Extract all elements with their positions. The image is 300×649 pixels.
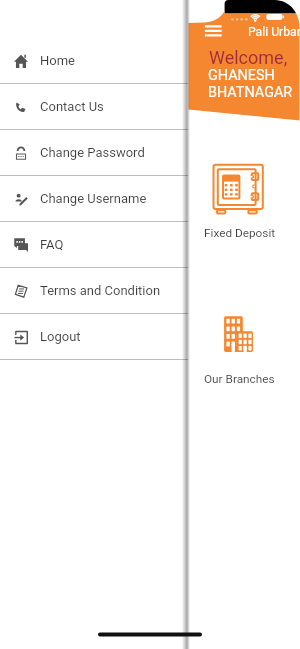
staticText: Terms and Condition: [40, 283, 161, 298]
staticText: Our Branches: [204, 372, 275, 386]
staticText: Logout: [40, 329, 81, 344]
staticText: Contact Us: [40, 99, 104, 114]
button[interactable]: Contact Us: [0, 84, 188, 129]
button[interactable]: Open navigation drawer: [197, 17, 229, 45]
button[interactable]: Logout: [0, 314, 188, 359]
button[interactable]: FAQ: [0, 222, 188, 267]
staticText: FAQ: [40, 237, 64, 252]
button[interactable]: Change Password: [0, 130, 188, 175]
staticText: Change Password: [40, 145, 145, 160]
staticText: Welcome,: [209, 47, 288, 68]
button[interactable]: Home: [0, 38, 188, 83]
staticText: BHATNAGAR: [208, 84, 293, 101]
staticText: GHANESH: [208, 67, 275, 84]
staticText: Home: [40, 53, 75, 68]
button[interactable]: Our Branches: [189, 292, 300, 397]
staticText: Change Username: [40, 191, 147, 206]
button[interactable]: Fixed Deposit: [189, 146, 300, 251]
button[interactable]: Terms and Condition: [0, 268, 188, 313]
staticText: Fixed Deposit: [204, 226, 276, 240]
staticText: Pali Urban: [248, 25, 300, 39]
button[interactable]: Change Username: [0, 176, 188, 221]
